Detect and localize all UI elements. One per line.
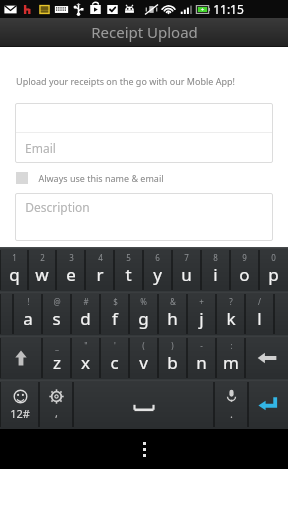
staticText: _: [55, 340, 59, 351]
staticText: 6: [155, 252, 160, 263]
staticText: h: [167, 307, 178, 330]
staticText: a: [23, 307, 33, 330]
staticText: j: [199, 307, 204, 330]
button[interactable]: 5: [114, 248, 143, 292]
button[interactable]: Description: [15, 193, 273, 241]
staticText: /: [258, 296, 261, 307]
button[interactable]: /: [245, 292, 274, 336]
staticText: u: [181, 263, 192, 286]
staticText: y: [153, 263, 162, 286]
button[interactable]: #: [71, 292, 100, 336]
staticText: o: [239, 263, 250, 286]
button[interactable]: Backspace: [245, 336, 288, 380]
staticText: (: [142, 340, 145, 351]
button[interactable]: _: [42, 336, 71, 380]
staticText: 12#: [10, 406, 30, 421]
button[interactable]: 2: [28, 248, 56, 292]
staticText: i: [213, 263, 218, 286]
staticText: ,: [55, 405, 58, 420]
button[interactable]: Always use this name & email: [16, 172, 164, 184]
staticText: k: [226, 307, 236, 330]
staticText: ?: [229, 296, 233, 307]
staticText: 0: [271, 252, 276, 263]
staticText: r: [96, 263, 104, 286]
staticText: .: [230, 406, 233, 421]
button[interactable]: ': [100, 336, 129, 380]
staticText: :: [230, 340, 233, 351]
button[interactable]: &: [158, 292, 187, 336]
staticText: 3: [69, 252, 74, 263]
button[interactable]: 7: [172, 248, 201, 292]
staticText: @: [53, 296, 61, 307]
button[interactable]: ": [71, 336, 100, 380]
staticText: s: [52, 307, 61, 330]
button[interactable]: [0, 292, 13, 336]
button[interactable]: 8: [201, 248, 230, 292]
button[interactable]: :: [216, 336, 245, 380]
button[interactable]: [274, 292, 288, 336]
staticText: n: [196, 351, 207, 374]
button[interactable]: 3: [56, 248, 85, 292]
staticText: 5: [126, 252, 131, 263]
button[interactable]: Email: [15, 133, 273, 163]
button[interactable]: 4: [85, 248, 114, 292]
button[interactable]: 9: [230, 248, 259, 292]
staticText: Upload your receipts on the go with our …: [16, 75, 235, 87]
staticText: b: [167, 351, 178, 374]
staticText: 2: [40, 252, 45, 263]
staticText: g: [138, 307, 149, 330]
staticText: x: [81, 351, 90, 374]
button[interactable]: +: [187, 292, 216, 336]
button[interactable]: 1: [0, 248, 28, 292]
button[interactable]: -: [187, 336, 216, 380]
staticText: p: [268, 263, 279, 286]
staticText: 9: [242, 252, 247, 263]
staticText: q: [9, 263, 20, 286]
staticText: $: [113, 296, 118, 307]
staticText: l: [257, 307, 262, 330]
staticText: &: [170, 296, 176, 307]
button[interactable]: Voice input: [214, 380, 248, 429]
button[interactable]: $: [100, 292, 129, 336]
staticText: w: [35, 263, 49, 286]
button[interactable]: ): [158, 336, 187, 380]
button[interactable]: (: [129, 336, 158, 380]
button[interactable]: Enter: [248, 380, 288, 429]
staticText: !: [27, 296, 30, 307]
button[interactable]: More options: [124, 429, 164, 469]
staticText: c: [110, 351, 119, 374]
staticText: ): [171, 340, 174, 351]
staticText: 7: [184, 252, 189, 263]
staticText: Receipt Upload: [91, 22, 198, 42]
staticText: e: [66, 263, 76, 286]
button[interactable]: Shift: [0, 336, 42, 380]
staticText: z: [53, 351, 61, 374]
staticText: d: [80, 307, 91, 330]
staticText: #: [83, 296, 89, 307]
button[interactable]: @: [42, 292, 71, 336]
staticText: ": [84, 340, 88, 351]
staticText: -: [200, 340, 203, 351]
button[interactable]: !: [13, 292, 42, 336]
staticText: %: [140, 296, 147, 307]
button[interactable]: Keyboard settings: [39, 380, 73, 429]
staticText: f: [112, 307, 118, 330]
staticText: 11:15: [213, 1, 244, 17]
button[interactable]: Space: [73, 380, 214, 429]
button[interactable]: ?: [216, 292, 245, 336]
button[interactable]: Emoji and symbols: [0, 380, 39, 429]
staticText: m: [223, 351, 239, 374]
button[interactable]: [15, 103, 273, 132]
staticText: t: [125, 263, 132, 286]
staticText: +: [199, 296, 204, 307]
staticText: 8: [213, 252, 218, 263]
button[interactable]: 0: [259, 248, 288, 292]
staticText: Email: [25, 140, 56, 156]
staticText: Always use this name & email: [38, 172, 164, 184]
staticText: 1: [12, 252, 17, 263]
staticText: Description: [25, 199, 90, 215]
staticText: 4: [98, 252, 103, 263]
staticText: ': [114, 340, 116, 351]
button[interactable]: 6: [143, 248, 172, 292]
button[interactable]: %: [129, 292, 158, 336]
